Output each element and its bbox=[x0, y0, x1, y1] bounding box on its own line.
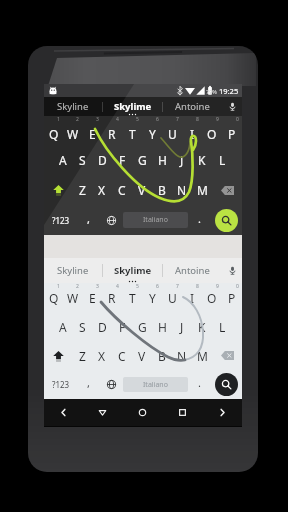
button[interactable]: J bbox=[172, 312, 192, 341]
staticText: Z bbox=[79, 182, 86, 198]
button[interactable]: ?123 bbox=[44, 370, 77, 399]
button[interactable]: L bbox=[212, 145, 232, 175]
button[interactable]: Italiano bbox=[123, 377, 188, 392]
button[interactable]: Italiano bbox=[123, 212, 188, 228]
button[interactable]: R bbox=[102, 116, 122, 145]
button[interactable]: , bbox=[77, 370, 100, 399]
button[interactable]: H bbox=[152, 145, 172, 175]
button[interactable]: M bbox=[192, 175, 212, 205]
button[interactable]: I bbox=[182, 116, 202, 145]
button[interactable]: N bbox=[172, 175, 192, 205]
button[interactable]: Hide keyboard bbox=[83, 399, 122, 426]
button[interactable]: Search bbox=[215, 373, 238, 396]
button[interactable]: H bbox=[152, 312, 172, 341]
button[interactable]: V bbox=[132, 341, 152, 370]
button[interactable]: Forward bbox=[202, 399, 242, 426]
button[interactable]: S bbox=[72, 312, 92, 341]
button[interactable]: , bbox=[77, 205, 100, 235]
button[interactable]: A bbox=[53, 145, 72, 175]
button[interactable]: Backspace bbox=[212, 341, 242, 370]
button[interactable]: Backspace bbox=[212, 175, 242, 205]
button[interactable]: U bbox=[162, 116, 182, 145]
button[interactable]: X bbox=[92, 175, 112, 205]
button[interactable]: Skylime bbox=[103, 97, 162, 116]
button[interactable]: N bbox=[172, 341, 192, 370]
button[interactable]: F bbox=[112, 145, 132, 175]
staticText: ?123 bbox=[52, 379, 70, 390]
button[interactable]: Change language bbox=[100, 370, 123, 399]
button[interactable]: . bbox=[188, 205, 211, 235]
button[interactable]: K bbox=[192, 145, 212, 175]
button[interactable]: F bbox=[112, 312, 132, 341]
button[interactable]: R bbox=[102, 283, 122, 312]
button[interactable]: Voice input bbox=[222, 258, 242, 283]
staticText: J bbox=[180, 152, 184, 168]
button[interactable]: D bbox=[92, 145, 112, 175]
button[interactable]: G bbox=[132, 312, 152, 341]
button[interactable]: J bbox=[172, 145, 192, 175]
button[interactable]: . bbox=[188, 370, 211, 399]
button[interactable]: T bbox=[122, 116, 142, 145]
staticText: 5 bbox=[136, 116, 139, 123]
staticText: 8 bbox=[196, 283, 199, 290]
staticText: D bbox=[98, 152, 107, 168]
button[interactable]: O bbox=[202, 283, 222, 312]
button[interactable]: Skyline bbox=[44, 97, 102, 116]
button[interactable]: Change language bbox=[100, 205, 123, 235]
button[interactable]: Q bbox=[44, 283, 63, 312]
button[interactable]: P bbox=[222, 283, 242, 312]
button[interactable]: B bbox=[152, 175, 172, 205]
button[interactable]: Skylime bbox=[103, 258, 162, 283]
staticText: C bbox=[118, 348, 126, 364]
button[interactable]: Back bbox=[44, 399, 83, 426]
button[interactable]: Z bbox=[73, 341, 92, 370]
staticText: 79% bbox=[206, 88, 217, 95]
button[interactable]: Search bbox=[215, 209, 238, 232]
button[interactable]: Z bbox=[73, 175, 92, 205]
button[interactable]: C bbox=[112, 341, 132, 370]
button[interactable]: B bbox=[152, 341, 172, 370]
button[interactable]: T bbox=[122, 283, 142, 312]
staticText: X bbox=[98, 182, 106, 198]
staticText: G bbox=[138, 152, 147, 168]
staticText: Skyline bbox=[57, 100, 89, 113]
button[interactable]: Skyline bbox=[44, 258, 102, 283]
button[interactable]: L bbox=[212, 312, 232, 341]
button[interactable]: Recents bbox=[162, 399, 202, 426]
staticText: V bbox=[138, 348, 146, 364]
button[interactable]: X bbox=[92, 341, 112, 370]
button[interactable]: Antoine bbox=[163, 258, 222, 283]
button[interactable]: Voice input bbox=[222, 97, 242, 116]
button[interactable]: D bbox=[92, 312, 112, 341]
button[interactable]: O bbox=[202, 116, 222, 145]
staticText: Italiano bbox=[143, 215, 168, 225]
staticText: R bbox=[108, 290, 116, 306]
button[interactable]: S bbox=[72, 145, 92, 175]
button[interactable]: Home bbox=[122, 399, 162, 426]
staticText: 2 bbox=[76, 283, 79, 290]
button[interactable]: Shift bbox=[44, 341, 73, 370]
button[interactable]: W bbox=[63, 116, 82, 145]
button[interactable]: W bbox=[63, 283, 82, 312]
button[interactable]: A bbox=[53, 312, 72, 341]
button[interactable]: V bbox=[132, 175, 152, 205]
button[interactable]: Y bbox=[142, 116, 162, 145]
button[interactable]: Antoine bbox=[163, 97, 222, 116]
button[interactable]: G bbox=[132, 145, 152, 175]
button[interactable]: U bbox=[162, 283, 182, 312]
button[interactable]: C bbox=[112, 175, 132, 205]
staticText: T bbox=[129, 290, 136, 306]
button[interactable]: K bbox=[192, 312, 212, 341]
button[interactable]: I bbox=[182, 283, 202, 312]
staticText: 9 bbox=[216, 116, 219, 123]
staticText: 1 bbox=[57, 283, 60, 290]
button[interactable]: M bbox=[192, 341, 212, 370]
button[interactable]: ?123 bbox=[44, 205, 77, 235]
button[interactable]: P bbox=[222, 116, 242, 145]
button[interactable]: E bbox=[82, 116, 102, 145]
button[interactable]: Q bbox=[44, 116, 63, 145]
button[interactable]: Shift bbox=[44, 175, 73, 205]
button[interactable]: Y bbox=[142, 283, 162, 312]
staticText: O bbox=[207, 126, 217, 142]
button[interactable]: E bbox=[82, 283, 102, 312]
